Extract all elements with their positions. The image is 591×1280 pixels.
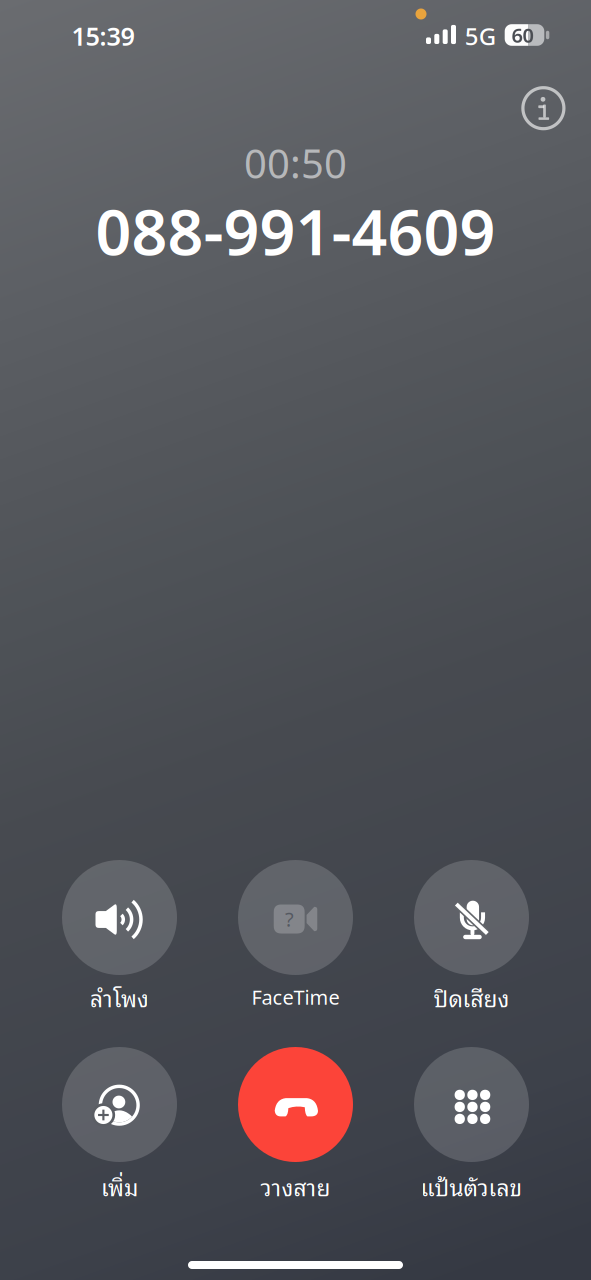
staticText: ปิดเสียง [433, 979, 509, 1015]
button[interactable]: Add call [35, 1047, 203, 1200]
staticText: วางสาย [260, 1168, 330, 1204]
staticText: 5G [465, 20, 496, 52]
staticText: ลำโพง [90, 979, 149, 1015]
button[interactable]: Keypad [387, 1047, 555, 1200]
button[interactable]: Call info [512, 77, 574, 139]
staticText: 15:39 [71, 19, 134, 53]
button[interactable]: Mute [387, 860, 555, 1011]
staticText: 088-991-4609 [95, 189, 495, 273]
button[interactable]: FaceTime [211, 860, 379, 1011]
button[interactable]: End call [211, 1047, 379, 1200]
staticText: 60 [511, 22, 533, 48]
staticText: แป้นตัวเลข [420, 1168, 522, 1204]
button[interactable]: Speaker [35, 860, 203, 1011]
staticText: 00:50 [244, 136, 347, 189]
staticText: ? [285, 906, 294, 932]
staticText: เพิ่ม [101, 1168, 138, 1204]
staticText: FaceTime [251, 984, 339, 1010]
